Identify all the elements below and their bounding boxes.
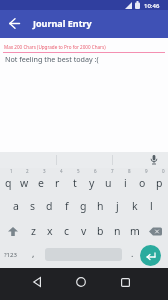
staticText: 1 (10, 168, 13, 174)
staticText: w (20, 176, 29, 190)
staticText: p (156, 176, 163, 190)
staticText: n (114, 224, 121, 238)
staticText: g (80, 199, 87, 213)
staticText: v (81, 224, 87, 238)
staticText: e (38, 176, 44, 190)
button[interactable]: v (75, 218, 92, 244)
staticText: j (116, 199, 119, 213)
button[interactable] (115, 272, 135, 292)
button[interactable] (27, 272, 47, 292)
staticText: c (64, 224, 70, 238)
button[interactable]: e (32, 168, 49, 193)
button[interactable] (140, 245, 161, 266)
staticText: z (31, 224, 36, 238)
staticText: s (30, 199, 36, 213)
staticText: f (65, 199, 69, 213)
staticText: a (13, 199, 19, 213)
staticText: 2 (26, 168, 29, 174)
button[interactable] (71, 272, 91, 292)
staticText: q (5, 176, 12, 190)
staticText: 9 (145, 168, 148, 174)
staticText: m (130, 224, 140, 238)
button[interactable]: t (66, 168, 83, 193)
button[interactable]: p (151, 168, 168, 193)
button[interactable]: g (75, 193, 92, 218)
button[interactable]: r (49, 168, 66, 193)
button[interactable]: c (58, 218, 75, 244)
button[interactable]: k (126, 193, 143, 218)
button[interactable]: , (32, 247, 35, 259)
button[interactable] (147, 153, 161, 167)
button[interactable] (0, 218, 25, 244)
button[interactable]: ?123 (4, 251, 17, 259)
staticText: d (46, 199, 53, 213)
staticText: h (97, 199, 104, 213)
button[interactable] (143, 218, 168, 244)
staticText: 6 (94, 168, 97, 174)
button[interactable]: . (131, 247, 134, 259)
staticText: o (139, 176, 146, 190)
button[interactable]: m (126, 218, 143, 244)
button[interactable]: d (41, 193, 58, 218)
staticText: y (89, 176, 95, 190)
staticText: t (73, 176, 77, 190)
staticText: 8 (128, 168, 131, 174)
staticText: 3 (43, 168, 46, 174)
button[interactable]: n (109, 218, 126, 244)
button[interactable]: q (0, 168, 16, 193)
staticText: 4 (60, 168, 63, 174)
button[interactable] (0, 9, 28, 37)
staticText: 0 (162, 168, 165, 174)
button[interactable]: f (58, 193, 75, 218)
button[interactable]: w (16, 168, 32, 193)
staticText: k (132, 199, 138, 213)
staticText: Max 200 Chars (Upgrade to Pro for 2000 C… (4, 44, 106, 50)
button[interactable]: y (83, 168, 100, 193)
button[interactable]: b (92, 218, 109, 244)
staticText: l (150, 199, 153, 213)
button[interactable]: s (24, 193, 41, 218)
button[interactable]: o (134, 168, 151, 193)
staticText: i (124, 176, 127, 190)
button[interactable]: a (8, 193, 24, 218)
button[interactable]: Not feeling the best today :( (5, 54, 99, 64)
button[interactable]: z (25, 218, 41, 244)
button[interactable]: i (117, 168, 134, 193)
staticText: 5 (77, 168, 80, 174)
staticText: r (55, 176, 60, 190)
staticText: Journal Entry (33, 17, 92, 29)
staticText: b (97, 224, 104, 238)
button[interactable]: h (92, 193, 109, 218)
staticText: 10:46 (144, 2, 160, 10)
staticText: x (47, 224, 53, 238)
button[interactable]: x (41, 218, 58, 244)
button[interactable]: u (100, 168, 117, 193)
staticText: u (105, 176, 112, 190)
staticText: 7 (111, 168, 114, 174)
button[interactable]: l (143, 193, 160, 218)
button[interactable]: j (109, 193, 126, 218)
